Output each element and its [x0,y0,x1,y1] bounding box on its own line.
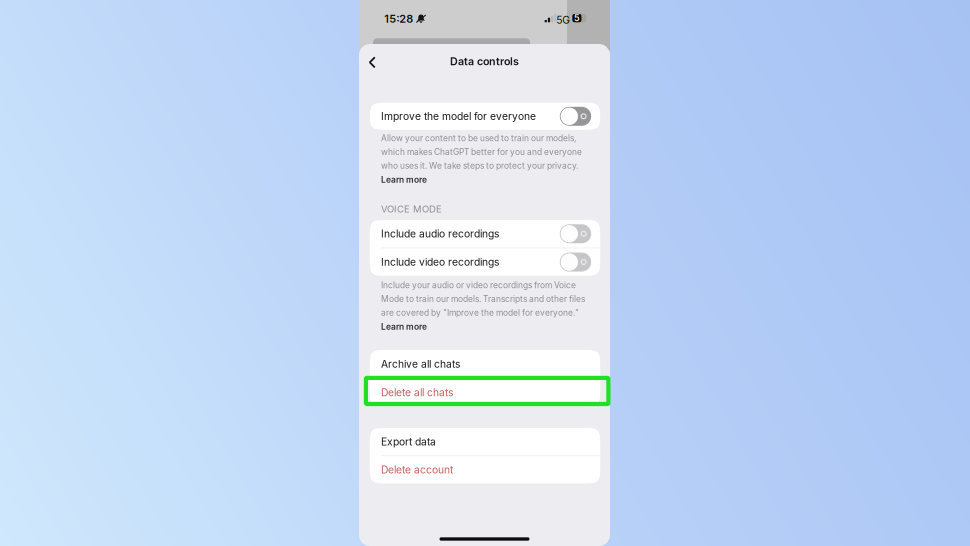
staticText: Delete all chats [381,386,453,399]
staticText: Include audio recordings [381,227,499,240]
staticText: 5 [574,13,580,23]
button[interactable]: Include audio recordings [370,224,600,243]
button[interactable]: Learn more [381,175,427,185]
staticText: 15:28 [384,12,413,25]
button[interactable]: Back [361,51,383,73]
staticText: Learn more [381,175,427,185]
button[interactable]: Improve the model for everyone [370,107,600,126]
staticText: Include your audio or video recordings f… [381,280,576,290]
button[interactable]: Archive all chats [370,358,600,370]
button[interactable]: Learn more [381,322,427,332]
staticText: Data controls [450,55,519,68]
staticText: are covered by "Improve the model for ev… [381,308,579,318]
staticText: Export data [381,435,436,448]
staticText: 5G [556,14,570,26]
staticText: Include video recordings [381,256,499,268]
staticText: which makes ChatGPT better for you and e… [381,147,582,157]
staticText: VOICE MODE [381,203,442,215]
button[interactable]: Include video recordings [370,253,600,272]
staticText: Mode to train our models. Transcripts an… [381,294,585,304]
button[interactable]: Delete account [370,463,600,476]
staticText: Allow your content to be used to train o… [381,133,576,143]
staticText: Improve the model for everyone [381,110,536,122]
button[interactable]: Export data [370,435,600,448]
staticText: Archive all chats [381,358,460,370]
staticText: who uses it. We take steps to protect yo… [381,161,578,171]
staticText: Delete account [381,463,453,476]
staticText: Learn more [381,322,427,332]
button[interactable]: Delete all chats [370,386,600,399]
